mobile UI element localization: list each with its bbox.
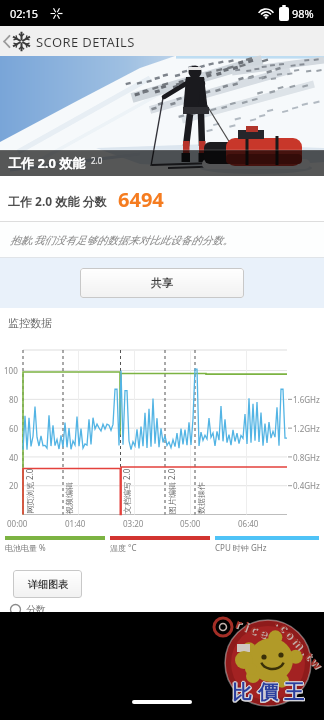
- staticText: 1.2GHz: [293, 423, 320, 434]
- staticText: 6494: [118, 186, 164, 213]
- staticText: 共享: [151, 276, 173, 290]
- staticText: 比價王: [228, 680, 306, 705]
- staticText: 详细图表: [28, 578, 68, 591]
- button[interactable]: 共享: [80, 268, 244, 298]
- staticText: SCORE DETAILS: [36, 33, 135, 51]
- staticText: 98%: [292, 6, 314, 21]
- staticText: 分数: [26, 603, 46, 616]
- staticText: 比價王: [228, 681, 306, 706]
- staticText: 抱歉,我们没有足够的数据来对比此设备的分数。: [10, 233, 234, 247]
- staticText: 05:00: [180, 518, 201, 529]
- staticText: 比價王: [229, 680, 307, 705]
- staticText: 80: [9, 394, 19, 405]
- button[interactable]: 详细图表: [13, 570, 82, 598]
- staticText: 图片编辑 2.0: [166, 468, 177, 514]
- staticText: rice: [234, 615, 275, 645]
- staticText: 工作 2.0 效能: [8, 154, 86, 172]
- staticText: 02:15: [10, 6, 39, 21]
- staticText: 06:40: [238, 518, 259, 529]
- staticText: .com.tw: [272, 615, 324, 675]
- staticText: 网页浏览 2.0: [24, 468, 35, 514]
- staticText: 文档编写 2.0: [121, 468, 132, 514]
- staticText: .com.tw: [273, 616, 324, 676]
- staticText: 01:40: [65, 518, 86, 529]
- button[interactable]: SCORE DETAILS: [0, 26, 324, 56]
- staticText: 1.6GHz: [293, 394, 320, 405]
- staticText: 监控数据: [8, 316, 52, 330]
- staticText: 电池电量 %: [5, 542, 46, 553]
- staticText: 00:00: [7, 518, 28, 529]
- staticText: 比價王: [230, 681, 308, 706]
- staticText: 100: [4, 365, 18, 376]
- staticText: rice: [233, 614, 274, 644]
- staticText: 0.4GHz: [293, 480, 320, 491]
- staticText: 03:20: [123, 518, 144, 529]
- staticText: 视频编辑: [64, 482, 74, 514]
- staticText: 比價王: [229, 681, 307, 706]
- staticText: 比價王: [230, 680, 308, 705]
- staticText: 20: [9, 480, 19, 491]
- staticText: 工作 2.0 效能 分数: [8, 193, 107, 209]
- staticText: 温度 °C: [110, 542, 137, 553]
- staticText: 60: [9, 423, 19, 434]
- staticText: 40: [9, 452, 19, 463]
- staticText: CPU 时钟 GHz: [215, 542, 267, 553]
- staticText: 2.0: [91, 155, 103, 166]
- staticText: 0.8GHz: [293, 452, 320, 463]
- staticText: 数据操作: [196, 482, 206, 514]
- staticText: 比價王: [229, 679, 307, 704]
